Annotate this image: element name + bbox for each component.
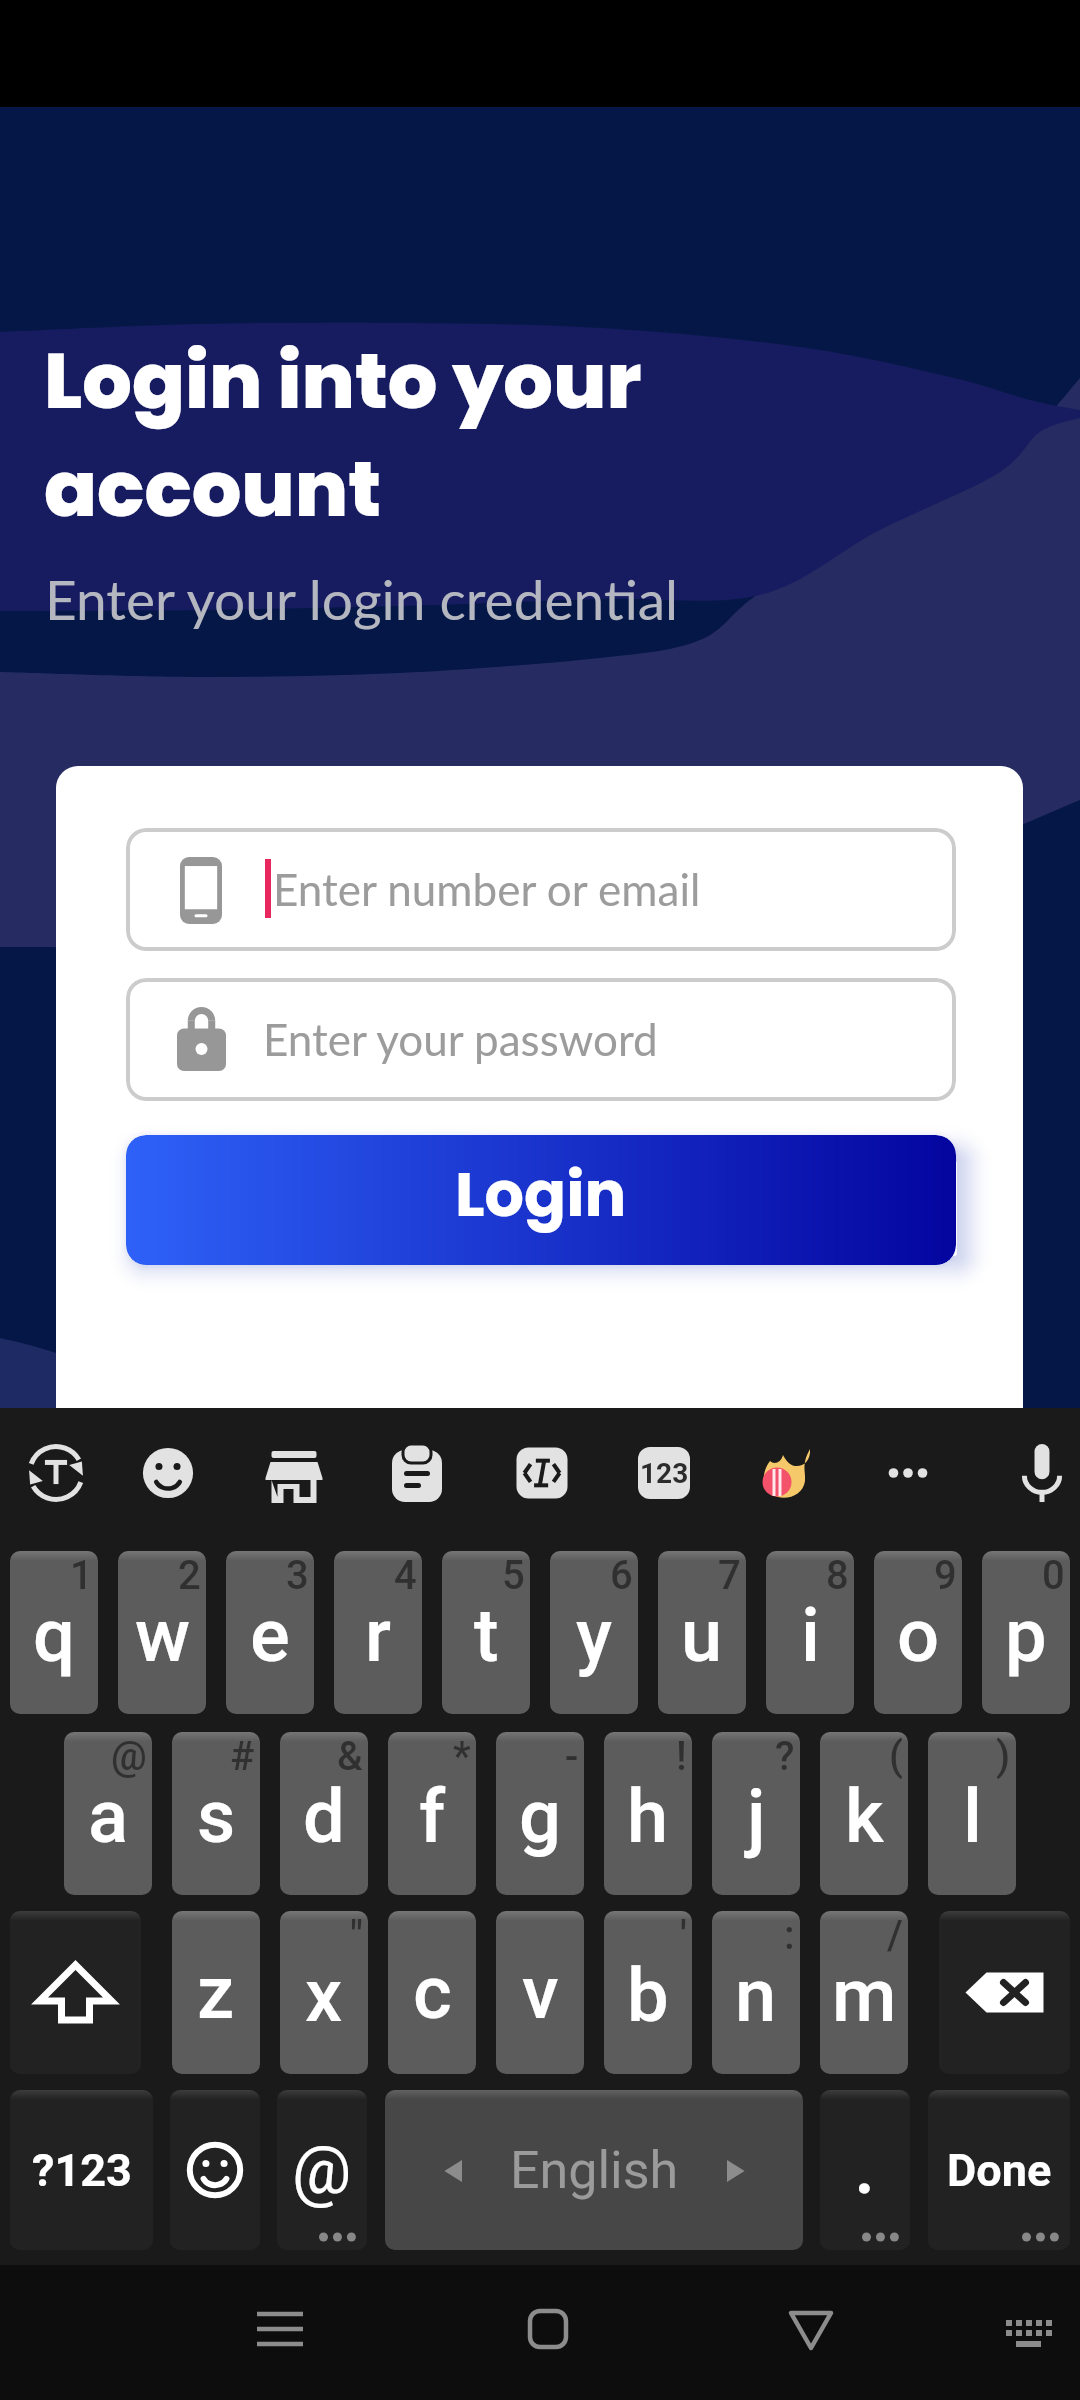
staticText: ? — [775, 1733, 795, 1780]
button[interactable]: ?123 — [10, 2090, 153, 2250]
button[interactable]: Enter number or email — [126, 828, 956, 951]
staticText: Enter your login credential — [45, 566, 678, 632]
button[interactable]: Shift — [10, 1911, 141, 2074]
button[interactable]: k — [820, 1732, 908, 1895]
button[interactable]: j — [712, 1732, 800, 1895]
staticText: n — [735, 1952, 777, 2039]
button[interactable]: m — [820, 1911, 908, 2074]
button[interactable]: o — [874, 1551, 962, 1714]
button[interactable]: l — [928, 1732, 1016, 1895]
button[interactable]: More options — [864, 1429, 952, 1517]
staticText: 2 — [178, 1552, 201, 1599]
button[interactable]: n — [712, 1911, 800, 2074]
staticText: 5 — [502, 1552, 525, 1599]
staticText: " — [350, 1912, 363, 1959]
button[interactable]: g — [496, 1732, 584, 1895]
staticText: # — [230, 1733, 255, 1780]
staticText: - — [565, 1733, 579, 1780]
button[interactable]: x — [280, 1911, 368, 2074]
staticText: a — [88, 1773, 129, 1860]
staticText: 7 — [718, 1552, 741, 1599]
button[interactable]: p — [982, 1551, 1070, 1714]
staticText: Enter your password — [263, 1013, 658, 1066]
button[interactable]: Emoji — [124, 1429, 212, 1517]
staticText: & — [337, 1733, 363, 1780]
button[interactable]: s — [172, 1732, 260, 1895]
button[interactable]: q — [10, 1551, 98, 1714]
staticText: : — [784, 1912, 795, 1959]
staticText: ?123 — [32, 2144, 132, 2197]
staticText: English — [510, 2140, 679, 2201]
button[interactable]: t — [442, 1551, 530, 1714]
staticText: j — [747, 1773, 766, 1860]
staticText: o — [897, 1592, 940, 1679]
staticText: @ — [292, 2132, 352, 2209]
staticText: 6 — [610, 1552, 633, 1599]
button[interactable]: u — [658, 1551, 746, 1714]
staticText: . — [855, 2132, 875, 2209]
button[interactable]: b — [604, 1911, 692, 2074]
staticText: 4 — [394, 1552, 417, 1599]
staticText: s — [197, 1773, 236, 1860]
staticText: 0 — [1042, 1552, 1065, 1599]
staticText: Login into your account — [44, 326, 642, 544]
button[interactable]: h — [604, 1732, 692, 1895]
staticText: y — [576, 1592, 613, 1679]
button[interactable]: d — [280, 1732, 368, 1895]
staticText: c — [413, 1949, 452, 2036]
staticText: p — [1005, 1592, 1047, 1679]
button[interactable]: Home — [498, 2279, 598, 2379]
button[interactable]: Recents — [230, 2279, 330, 2379]
staticText: h — [627, 1773, 669, 1860]
button[interactable]: @ — [277, 2090, 367, 2250]
button[interactable]: a — [64, 1732, 152, 1895]
button[interactable]: w — [118, 1551, 206, 1714]
button[interactable]: Numbers — [620, 1429, 708, 1517]
button[interactable]: Back — [761, 2279, 861, 2379]
staticText: b — [627, 1952, 669, 2039]
staticText: 1 — [70, 1552, 93, 1599]
staticText: @ — [111, 1733, 147, 1780]
button[interactable]: Space — [385, 2090, 803, 2250]
staticText: ' — [680, 1912, 687, 1959]
staticText: Done — [947, 2144, 1052, 2197]
button[interactable]: GIF — [743, 1429, 831, 1517]
staticText: f — [419, 1773, 446, 1860]
button[interactable]: Stickers — [250, 1429, 338, 1517]
staticText: 3 — [286, 1552, 309, 1599]
staticText: x — [305, 1952, 343, 2039]
button[interactable]: . — [820, 2090, 910, 2250]
button[interactable]: Translate — [12, 1429, 100, 1517]
staticText: ) — [996, 1733, 1011, 1780]
staticText: 123 — [640, 1457, 689, 1490]
button[interactable]: Emoji — [170, 2090, 260, 2250]
button[interactable]: Clipboard — [373, 1429, 461, 1517]
staticText: ! — [676, 1733, 687, 1780]
staticText: u — [681, 1592, 723, 1679]
staticText: w — [135, 1592, 190, 1679]
staticText: * — [453, 1733, 471, 1780]
button[interactable]: Voice input — [998, 1429, 1080, 1517]
staticText: e — [250, 1592, 290, 1679]
staticText: d — [303, 1773, 345, 1860]
button[interactable]: y — [550, 1551, 638, 1714]
button[interactable]: i — [766, 1551, 854, 1714]
staticText: q — [33, 1592, 76, 1679]
staticText: z — [197, 1949, 235, 2036]
button[interactable]: c — [388, 1911, 476, 2074]
button[interactable]: r — [334, 1551, 422, 1714]
button[interactable]: Backspace — [939, 1911, 1070, 2074]
button[interactable]: e — [226, 1551, 314, 1714]
staticText: i — [801, 1592, 820, 1679]
staticText: 8 — [826, 1552, 849, 1599]
button[interactable]: v — [496, 1911, 584, 2074]
button[interactable]: Hide keyboard — [977, 2279, 1077, 2379]
button[interactable]: f — [388, 1732, 476, 1895]
button[interactable]: Login — [126, 1135, 956, 1265]
button[interactable]: Done — [928, 2090, 1070, 2250]
staticText: Enter number or email — [273, 863, 701, 916]
button[interactable]: z — [172, 1911, 260, 2074]
staticText: k — [845, 1773, 884, 1860]
button[interactable]: Enter your password — [126, 978, 956, 1101]
button[interactable]: Text editing — [498, 1429, 586, 1517]
